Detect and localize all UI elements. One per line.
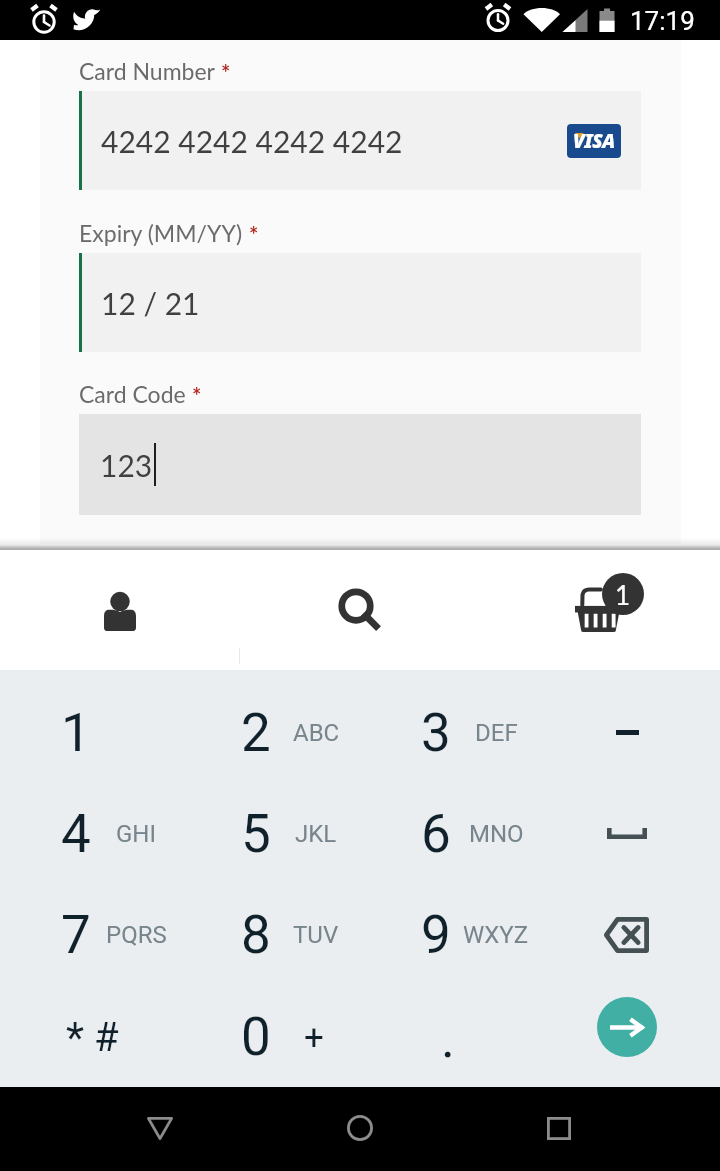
button[interactable]: Search: [240, 550, 480, 670]
staticText: +: [304, 1017, 324, 1058]
staticText: ABC: [293, 719, 340, 747]
staticText: .: [441, 1008, 455, 1070]
staticText: *: [249, 221, 259, 247]
staticText: DEF: [475, 719, 518, 747]
staticText: 7: [61, 904, 91, 966]
button[interactable]: Home: [310, 1087, 410, 1171]
button[interactable]: Account: [0, 550, 240, 670]
button[interactable]: 4242 4242 4242 4242: [79, 91, 641, 190]
staticText: *: [221, 59, 231, 85]
button[interactable]: *: [0, 986, 180, 1088]
button[interactable]: Enter: [597, 997, 657, 1057]
button[interactable]: 5: [180, 783, 360, 884]
staticText: VISA: [573, 128, 615, 154]
staticText: Card Code: [79, 380, 186, 408]
staticText: 0: [241, 1006, 271, 1068]
button[interactable]: 3: [360, 682, 540, 783]
staticText: TUV: [293, 921, 339, 949]
staticText: 2: [241, 702, 271, 764]
button[interactable]: Space: [540, 783, 720, 884]
button[interactable]: 0: [180, 986, 360, 1088]
staticText: 123: [100, 447, 153, 483]
staticText: #: [94, 1014, 119, 1061]
button[interactable]: Dash: [540, 682, 720, 783]
staticText: 1: [61, 702, 91, 764]
staticText: 6: [421, 803, 451, 865]
button[interactable]: Shopping basket, 1 item: [480, 550, 720, 670]
staticText: 5: [241, 803, 271, 865]
button[interactable]: 7: [0, 884, 180, 986]
button[interactable]: 6: [360, 783, 540, 884]
button[interactable]: 4: [0, 783, 180, 884]
staticText: Expiry (MM/YY): [79, 219, 243, 247]
staticText: *: [66, 1013, 85, 1062]
button[interactable]: 12 / 21: [79, 253, 641, 352]
button[interactable]: .: [360, 986, 540, 1088]
staticText: 8: [241, 904, 271, 966]
button[interactable]: 1: [0, 682, 180, 783]
staticText: 1: [615, 579, 631, 610]
staticText: 9: [421, 904, 451, 966]
button[interactable]: 2: [180, 682, 360, 783]
staticText: Card Number: [79, 57, 215, 85]
staticText: JKL: [295, 820, 337, 848]
staticText: MNO: [469, 820, 524, 848]
staticText: *: [192, 382, 202, 408]
button[interactable]: Recent apps: [509, 1087, 609, 1171]
staticText: 3: [421, 702, 451, 764]
staticText: 17:19: [630, 6, 695, 36]
staticText: PQRS: [106, 921, 167, 949]
staticText: 12 / 21: [101, 285, 200, 321]
button[interactable]: Back: [110, 1087, 210, 1171]
staticText: GHI: [116, 820, 156, 848]
button[interactable]: 123: [79, 414, 641, 515]
button[interactable]: 8: [180, 884, 360, 986]
button[interactable]: Backspace: [540, 884, 720, 986]
staticText: 4: [61, 803, 91, 865]
staticText: 4242 4242 4242 4242: [101, 123, 403, 159]
button[interactable]: 9: [360, 884, 540, 986]
staticText: WXYZ: [463, 921, 529, 949]
